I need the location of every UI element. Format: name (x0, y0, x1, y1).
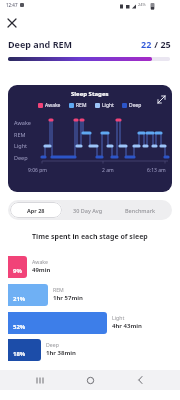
staticText: Awake (45, 102, 61, 109)
staticText: Benchmark (125, 207, 156, 214)
staticText: REM (14, 131, 26, 138)
button[interactable]: Benchmark (114, 200, 166, 220)
staticText: REM (53, 286, 64, 293)
button[interactable] (5, 16, 19, 30)
staticText: Light (112, 314, 125, 321)
staticText: 22 (141, 38, 152, 50)
staticText: 6:13 am (147, 167, 166, 174)
button[interactable] (78, 370, 102, 390)
staticText: 18% (13, 350, 26, 358)
button[interactable]: 9% (8, 256, 180, 278)
staticText: 49min (32, 266, 51, 274)
button[interactable]: 30 Day Avg (60, 200, 116, 220)
staticText: / 25 (152, 38, 171, 50)
staticText: Deep and REM (8, 38, 73, 50)
staticText: Deep (129, 102, 142, 109)
staticText: 2 am (102, 167, 114, 174)
staticText: 1hr 57min (53, 294, 83, 302)
staticText: Deep (14, 154, 28, 161)
staticText: Time spent in each stage of sleep (32, 232, 148, 242)
staticText: Awake (14, 119, 31, 126)
staticText: 30 Day Avg (73, 207, 103, 214)
staticText: 1hr 38min (46, 349, 76, 357)
button[interactable] (154, 92, 168, 106)
staticText: 9% (13, 267, 22, 275)
staticText: Light (14, 142, 28, 149)
button[interactable]: 21% (8, 284, 180, 306)
staticText: REM (76, 102, 87, 109)
staticText: 4hr 43min (112, 322, 142, 330)
button[interactable]: Apr 28 (10, 202, 62, 218)
staticText: 52% (13, 323, 26, 331)
staticText: Deep (46, 341, 59, 348)
staticText: Awake (32, 258, 48, 265)
staticText: Apr 28 (27, 207, 45, 214)
staticText: 21% (13, 295, 26, 303)
button[interactable]: 52% (8, 312, 180, 334)
staticText: 9:06 pm (28, 167, 47, 174)
staticText: Light (102, 102, 114, 109)
button[interactable]: 18% (8, 339, 180, 361)
button[interactable] (28, 370, 52, 390)
button[interactable] (128, 370, 152, 390)
staticText: 24% (138, 2, 146, 7)
staticText: 12:47 (6, 2, 18, 8)
staticText: Sleep Stages (71, 90, 109, 98)
